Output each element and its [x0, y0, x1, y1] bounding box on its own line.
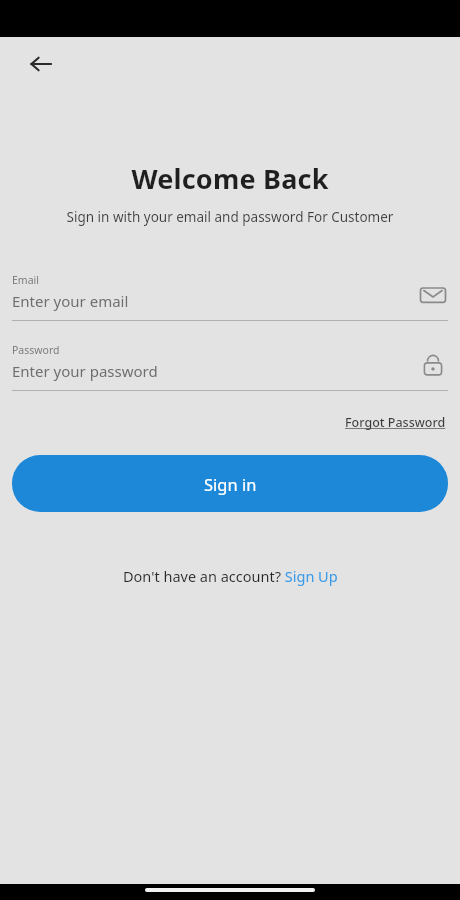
button[interactable]: Don't have an account? Sign Up: [119, 562, 342, 590]
staticText: Enter your email: [12, 291, 129, 311]
staticText: Sign in with your email and password For…: [0, 208, 460, 226]
other: Password: [418, 350, 448, 380]
other: Email: [418, 280, 448, 310]
staticText: Password: [12, 343, 60, 357]
button[interactable]: Forgot Password: [343, 412, 448, 433]
staticText: Enter your password: [12, 361, 158, 381]
button[interactable]: Email: [12, 273, 448, 311]
button[interactable]: Back: [21, 44, 61, 84]
button[interactable]: Sign in: [12, 455, 448, 512]
staticText: Don't have an account? Sign Up: [123, 566, 338, 586]
button[interactable]: Password: [12, 343, 448, 381]
staticText: Email: [12, 273, 39, 287]
staticText: Welcome Back: [0, 160, 460, 197]
staticText: Forgot Password: [345, 414, 446, 431]
staticText: Sign in: [204, 473, 257, 495]
